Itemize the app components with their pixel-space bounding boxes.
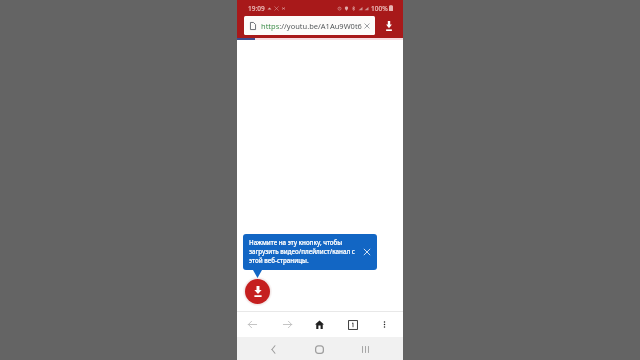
staticText: https://youtu.be/A1Au9W0t6 [261, 21, 362, 31]
button[interactable]: Download [375, 16, 403, 35]
button[interactable]: Tabs [342, 312, 364, 337]
staticText: Нажмите на эту кнопку, чтобы загрузить в… [249, 238, 360, 265]
button[interactable]: Home [310, 340, 328, 358]
button[interactable]: Download video [245, 279, 270, 304]
button[interactable]: Back [264, 340, 282, 358]
button[interactable]: Back [241, 312, 263, 337]
other: Clear [364, 23, 370, 29]
button[interactable]: Нажмите на эту кнопку, чтобы загрузить в… [243, 234, 377, 270]
button[interactable]: More options [373, 312, 395, 337]
button[interactable]: https://youtu.be/A1Au9W0t6 [244, 16, 375, 35]
other: Close [363, 248, 371, 256]
button[interactable]: Home [308, 312, 330, 337]
staticText: 19:09 [248, 4, 265, 13]
button[interactable]: Forward [276, 312, 298, 337]
button[interactable]: Recent apps [356, 340, 374, 358]
staticText: 100% [371, 4, 388, 13]
